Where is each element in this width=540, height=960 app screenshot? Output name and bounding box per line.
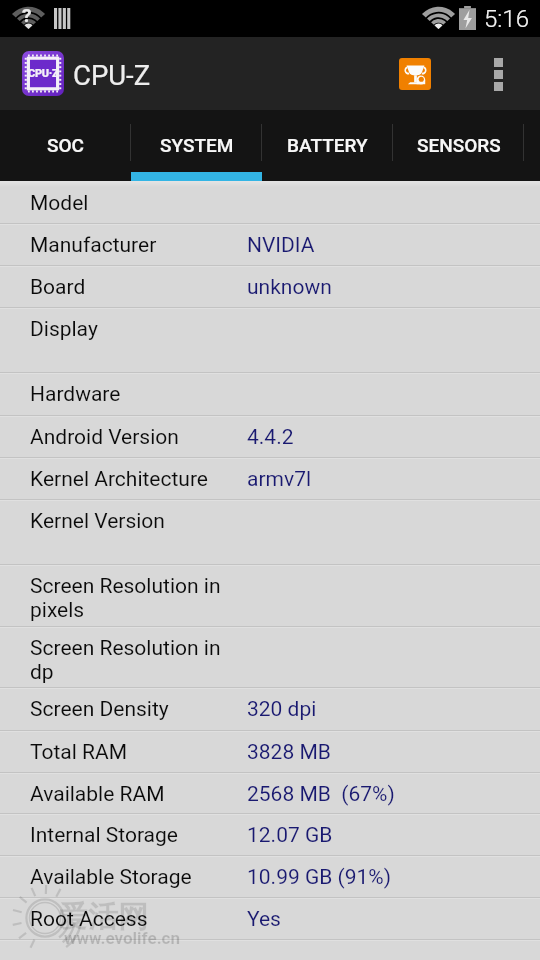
button[interactable]: Benchmark [399, 58, 431, 90]
button[interactable]: Internal Storage [0, 813, 540, 855]
staticText: Total RAM [30, 740, 128, 765]
staticText: Available Storage [30, 865, 192, 890]
staticText: ? [22, 4, 32, 26]
button[interactable]: Board [0, 265, 540, 307]
staticText: 2568 MB (67%) [247, 782, 395, 807]
staticText: unknown [247, 275, 332, 300]
staticText: Yes [247, 907, 281, 932]
button[interactable]: Screen Resolution in dp [0, 626, 540, 687]
staticText: 4.4.2 [247, 425, 294, 450]
staticText: Internal Storage [30, 823, 178, 848]
staticText: Model [30, 191, 89, 216]
staticText: BATTERY [287, 134, 368, 156]
staticText: SENSORS [417, 134, 501, 156]
button[interactable]: Available RAM [0, 772, 540, 813]
staticText: Kernel Version [30, 509, 165, 534]
button[interactable]: More options [474, 37, 522, 110]
button[interactable]: Kernel Architecture [0, 457, 540, 499]
button[interactable]: SOC [0, 110, 131, 181]
button[interactable]: Screen Density [0, 687, 540, 730]
staticText: 10.99 GB (91%) [247, 865, 392, 890]
button[interactable]: Display [0, 307, 540, 372]
staticText: SYSTEM [160, 134, 234, 156]
staticText: Kernel Architecture [30, 467, 208, 492]
button[interactable]: Hardware [0, 372, 540, 415]
staticText: NVIDIA [247, 233, 315, 258]
staticText: Screen Density [30, 697, 169, 722]
button[interactable]: BATTERY [262, 110, 393, 181]
staticText: 爱活网 [58, 898, 148, 936]
staticText: Available RAM [30, 782, 165, 807]
staticText: Display [30, 317, 98, 342]
button[interactable]: SYSTEM [131, 110, 262, 181]
staticText: SOC [47, 134, 84, 156]
staticText: CPU-Z [73, 59, 151, 91]
staticText: 5:16 [484, 5, 529, 33]
staticText: Manufacturer [30, 233, 157, 258]
staticText: Screen Resolution in dp [30, 636, 247, 684]
button[interactable]: Total RAM [0, 730, 540, 772]
button[interactable]: Screen Resolution in pixels [0, 564, 540, 626]
staticText: armv7l [247, 467, 312, 492]
staticText: Board [30, 275, 86, 300]
staticText: Screen Resolution in pixels [30, 574, 247, 622]
button[interactable]: Root Access [0, 897, 540, 939]
staticText: 320 dpi [247, 697, 317, 722]
button[interactable]: Model [0, 187, 540, 223]
button[interactable]: Kernel Version [0, 499, 540, 564]
staticText: CPU·Z [28, 67, 59, 80]
button[interactable]: Android Version [0, 415, 540, 457]
staticText: 3828 MB [247, 740, 331, 765]
button[interactable]: Available Storage [0, 855, 540, 897]
staticText: Android Version [30, 425, 179, 450]
button[interactable]: Manufacturer [0, 223, 540, 265]
staticText: www.evolife.cn [64, 928, 181, 948]
staticText: Hardware [30, 382, 121, 407]
staticText: Root Access [30, 907, 148, 932]
staticText: 12.07 GB [247, 823, 333, 848]
button[interactable]: SENSORS [393, 110, 524, 181]
